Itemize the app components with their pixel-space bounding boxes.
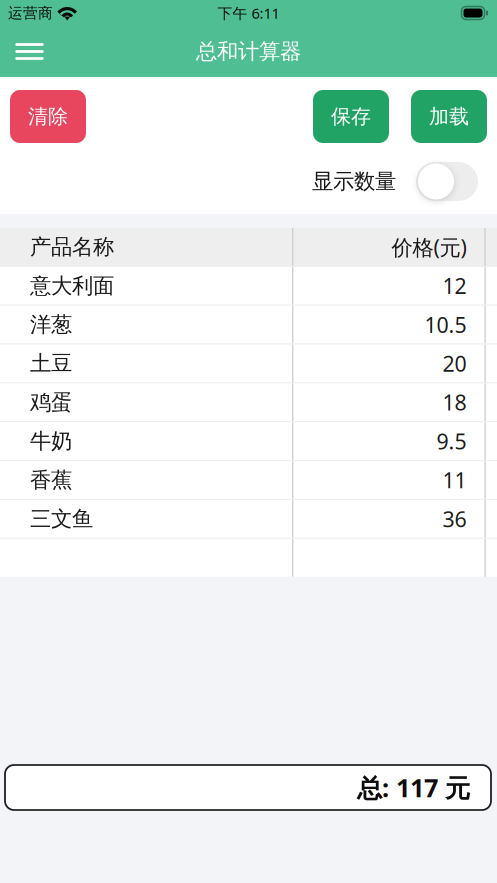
button[interactable]: 菜单 bbox=[0, 26, 59, 77]
staticText: 三文鱼 bbox=[30, 506, 93, 532]
staticText: 意大利面 bbox=[30, 273, 114, 299]
staticText: 10.5 bbox=[424, 310, 466, 339]
staticText: 总: 117 元 bbox=[357, 771, 470, 804]
button[interactable]: 清除 bbox=[10, 90, 86, 143]
staticText: 价格(元) bbox=[391, 233, 466, 261]
staticText: 12 bbox=[442, 272, 466, 300]
staticText: 20 bbox=[442, 349, 466, 378]
staticText: 18 bbox=[442, 388, 466, 416]
staticText: 牛奶 bbox=[30, 428, 72, 454]
staticText: 土豆 bbox=[30, 350, 72, 377]
staticText: 9.5 bbox=[436, 427, 466, 455]
staticText: 总和计算器 bbox=[196, 38, 301, 65]
staticText: 鸡蛋 bbox=[30, 389, 72, 415]
staticText: 加载 bbox=[429, 104, 469, 129]
staticText: 保存 bbox=[331, 104, 371, 129]
staticText: 清除 bbox=[28, 104, 68, 129]
staticText: 显示数量 bbox=[312, 168, 396, 195]
staticText: 香蕉 bbox=[30, 467, 72, 493]
staticText: 36 bbox=[442, 505, 466, 533]
staticText: 下午 6:11 bbox=[217, 3, 279, 23]
button[interactable]: 加载 bbox=[411, 90, 487, 143]
staticText: 运营商 bbox=[8, 4, 53, 22]
button[interactable]: 保存 bbox=[313, 90, 389, 143]
staticText: 产品名称 bbox=[30, 234, 114, 260]
button[interactable]: 显示数量 bbox=[416, 162, 478, 201]
staticText: 11 bbox=[442, 466, 466, 494]
staticText: 洋葱 bbox=[30, 311, 72, 338]
